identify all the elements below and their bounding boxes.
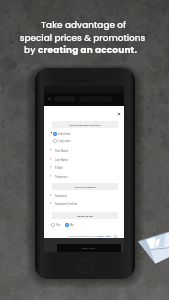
- staticText: YOUR PASSWORD: [74, 185, 96, 188]
- button[interactable]: Yes: [51, 223, 74, 227]
- staticText: *: [50, 158, 52, 162]
- button[interactable]: *: [50, 202, 78, 206]
- staticText: *: [50, 175, 52, 179]
- staticText: I have read and agree to the: [68, 235, 97, 238]
- staticText: No: [70, 223, 74, 227]
- staticText: E-Mail: [55, 166, 63, 170]
- button[interactable]: Close: [116, 111, 122, 117]
- button[interactable]: *: [50, 149, 69, 153]
- staticText: Privacy Policy: [97, 235, 112, 238]
- staticText: NEWSLETTER: [77, 214, 94, 217]
- button[interactable]: Corporate: [53, 139, 71, 143]
- staticText: Telephone: [55, 175, 68, 179]
- staticText: Password: [55, 194, 67, 198]
- staticText: by creating an account.: [0, 44, 165, 57]
- staticText: Yes: [56, 223, 61, 227]
- button[interactable]: *: [50, 166, 63, 170]
- staticText: First Name: [55, 149, 69, 153]
- button[interactable]: *: [50, 194, 67, 198]
- button[interactable]: *: [50, 175, 68, 179]
- button[interactable]: I have read and agree to the: [68, 235, 117, 238]
- button[interactable]: NEXT STEP: [57, 244, 121, 252]
- staticText: *: [50, 149, 52, 153]
- button[interactable]: *: [50, 158, 68, 162]
- staticText: Last Name: [55, 158, 68, 162]
- staticText: *: [50, 166, 52, 170]
- staticText: special prices & promotions: [0, 32, 167, 45]
- staticText: Corporate: [58, 139, 71, 143]
- staticText: YOUR PERSONAL DETAILS: [69, 123, 101, 126]
- staticText: Password Confirm: [55, 202, 78, 206]
- staticText: Individual: [58, 132, 71, 136]
- staticText: NEXT STEP: [82, 247, 96, 250]
- staticText: *: [50, 202, 52, 206]
- staticText: Take advantage of: [0, 19, 168, 32]
- button[interactable]: Individual: [53, 132, 71, 136]
- staticText: *: [50, 194, 52, 198]
